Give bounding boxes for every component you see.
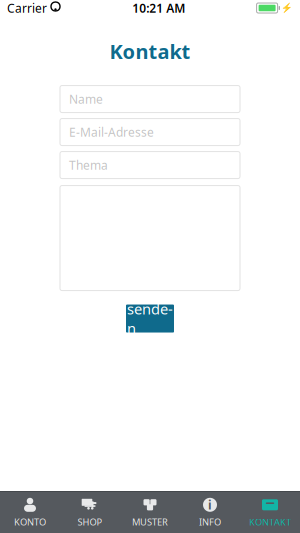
staticText: INFO (199, 516, 221, 528)
staticText: KONTO (14, 516, 46, 528)
staticText: MUSTER (132, 516, 168, 528)
staticText: Thema (69, 157, 108, 173)
staticText: 10:21 AM (132, 0, 185, 16)
button[interactable]: MUSTER (120, 492, 180, 533)
staticText: i (208, 497, 212, 513)
button[interactable]: senden (126, 305, 174, 333)
button[interactable]: KONTO (0, 492, 60, 533)
staticText: Name (69, 91, 103, 107)
staticText: senden (127, 299, 173, 338)
button[interactable]: KONTAKT (240, 492, 300, 533)
staticText: KONTAKT (249, 516, 291, 528)
staticText: SHOP (77, 516, 102, 528)
button[interactable]: SHOP (60, 492, 120, 533)
staticText: ⚡ (281, 3, 293, 13)
button[interactable]: i (180, 492, 240, 533)
staticText: E-Mail-Adresse (69, 124, 154, 140)
staticText: Carrier (7, 0, 47, 16)
staticText: Kontakt (109, 38, 190, 65)
